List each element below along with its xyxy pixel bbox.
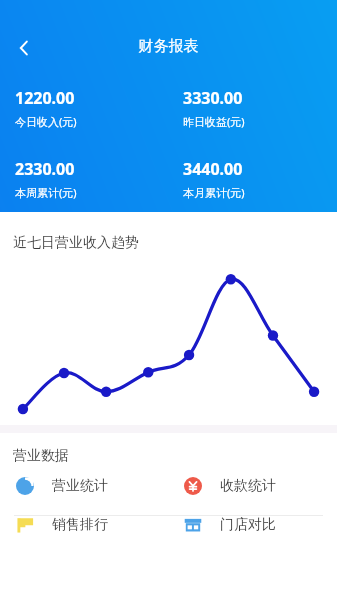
button[interactable]: Back: [4, 28, 44, 68]
staticText: 2330.00: [15, 158, 75, 180]
staticText: 今日收入(元): [15, 114, 77, 129]
staticText: 收款统计: [220, 477, 276, 495]
button[interactable]: 门店对比: [168, 516, 337, 534]
staticText: 本月累计(元): [183, 185, 245, 200]
staticText: 3330.00: [183, 87, 243, 109]
staticText: 昨日收益(元): [183, 114, 245, 129]
staticText: 营业统计: [52, 477, 108, 495]
button[interactable]: 销售排行: [0, 516, 168, 534]
staticText: 销售排行: [52, 516, 108, 534]
staticText: 近七日营业收入趋势: [13, 234, 139, 252]
staticText: 1220.00: [15, 87, 75, 109]
staticText: 门店对比: [220, 516, 276, 534]
button[interactable]: 营业统计: [0, 477, 168, 495]
button[interactable]: 收款统计: [168, 477, 337, 495]
staticText: 财务报表: [0, 37, 337, 56]
staticText: 本周累计(元): [15, 185, 77, 200]
staticText: 营业数据: [13, 447, 69, 465]
staticText: 3440.00: [183, 158, 243, 180]
